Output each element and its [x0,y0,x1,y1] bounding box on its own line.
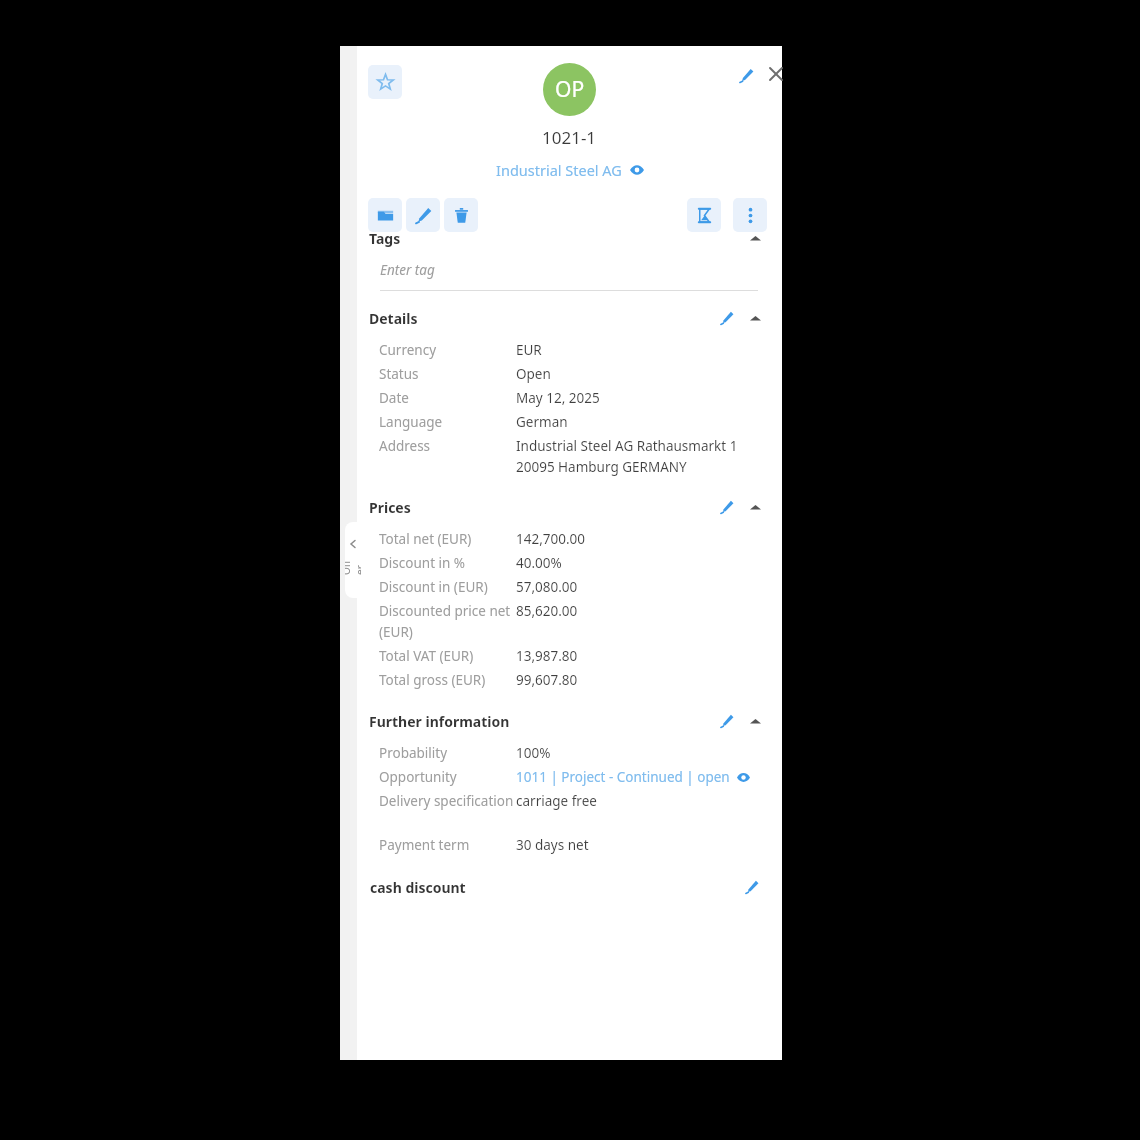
button[interactable]: Favorite [368,65,402,99]
button[interactable]: Payment term [357,836,782,854]
staticText: Discount in % [379,554,516,572]
button[interactable]: cash discount [357,874,782,900]
button[interactable]: Edit section [715,306,739,330]
button[interactable]: Probability [357,744,782,762]
staticText: German [516,413,568,431]
button[interactable]: Status [357,365,782,383]
staticText: 40.00% [516,554,562,572]
staticText: 100% [516,744,551,762]
staticText: Delivery specification [379,792,516,810]
staticText: Industrial Steel AG Rathausmarkt 1 20095… [516,437,738,476]
button[interactable]: Address [357,437,782,476]
staticText: carriage free [516,792,597,810]
staticText: Enter tag [380,261,435,279]
staticText: Discounted price net (EUR) [379,602,516,641]
staticText: 57,080.00 [516,578,578,596]
button[interactable]: Discount in % [357,554,782,572]
button[interactable]: Delivery specification [357,792,782,810]
staticText: 13,987.80 [516,647,578,665]
staticText: Discount in (EUR) [379,578,516,596]
staticText: Probability [379,744,516,762]
staticText: EUR [516,341,542,359]
button[interactable]: Offer panel [345,522,361,598]
button[interactable]: Edit [733,62,759,88]
staticText: Date [379,389,516,407]
button[interactable]: Discounted price net (EUR) [357,602,782,641]
button[interactable]: Edit record [406,198,440,232]
staticText: Tags [369,229,401,248]
staticText: Total net (EUR) [379,530,516,548]
staticText: Address [379,437,516,455]
button[interactable]: Language [357,413,782,431]
staticText: 85,620.00 [516,602,578,620]
button[interactable]: Edit cash discount [740,875,764,899]
button[interactable]: Details [357,305,782,331]
button[interactable]: Open folder [368,198,402,232]
button[interactable]: Close [762,60,790,88]
staticText: Total gross (EUR) [379,671,516,689]
staticText: Payment term [379,836,516,854]
staticText: Offer [345,559,361,575]
button[interactable]: Total VAT (EUR) [357,647,782,665]
button[interactable]: Opportunity [357,768,782,786]
button[interactable]: Prices [357,494,782,520]
button[interactable]: OP [543,63,596,116]
staticText: Details [369,309,418,328]
staticText: Further information [369,712,510,731]
staticText: Status [379,365,516,383]
staticText: Currency [379,341,516,359]
button[interactable]: Collapse [744,307,766,329]
button[interactable]: More options [733,198,767,232]
staticText: 99,607.80 [516,671,578,689]
button[interactable]: Collapse [744,227,766,249]
button[interactable]: Total gross (EUR) [357,671,782,689]
button[interactable]: Total net (EUR) [357,530,782,548]
button[interactable]: Delete [444,198,478,232]
button[interactable]: Tags [357,225,782,251]
staticText: Prices [369,498,411,517]
staticText: Language [379,413,516,431]
staticText: Industrial Steel AG [496,160,622,180]
button[interactable]: Currency [357,341,782,359]
staticText: cash discount [370,878,466,897]
staticText: OP [555,75,585,104]
staticText: Opportunity [379,768,516,786]
staticText: Total VAT (EUR) [379,647,516,665]
staticText: Open [516,365,551,383]
button[interactable]: Further information [357,708,782,734]
button[interactable]: Discount in (EUR) [357,578,782,596]
staticText: May 12, 2025 [516,389,600,407]
staticText: 1011 | Project - Continued | open [516,768,730,786]
button[interactable]: History [687,198,721,232]
staticText: 142,700.00 [516,530,586,548]
button[interactable]: Collapse [744,496,766,518]
staticText: 30 days net [516,836,589,854]
button[interactable]: Industrial Steel AG [357,160,782,180]
button[interactable]: Edit section [715,709,739,733]
button[interactable]: Date [357,389,782,407]
staticText: 1021-1 [542,126,597,149]
button[interactable]: Collapse [744,710,766,732]
button[interactable]: Edit section [715,495,739,519]
button[interactable]: Enter tag [380,251,758,291]
